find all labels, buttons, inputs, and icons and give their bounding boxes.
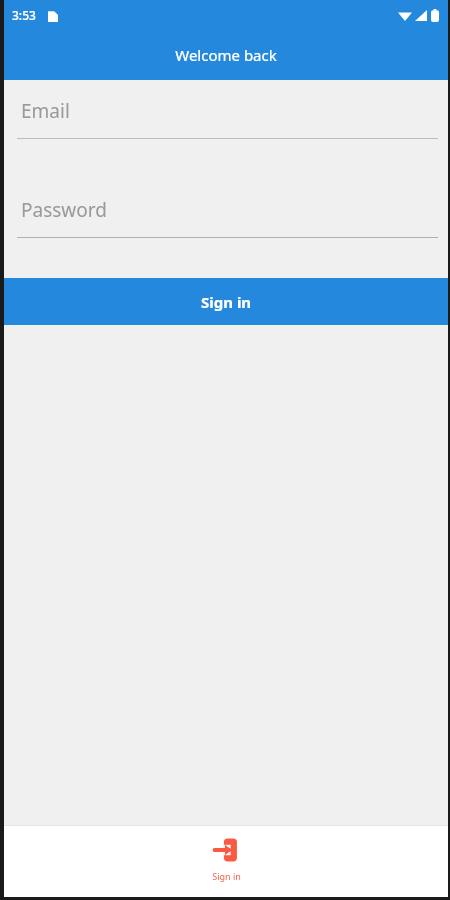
staticText: Welcome back	[175, 45, 277, 65]
button[interactable]: Password	[21, 193, 436, 227]
staticText: Sign in	[201, 292, 252, 312]
staticText: Password	[21, 197, 107, 223]
button[interactable]: Sign in	[166, 826, 286, 882]
staticText: Email	[21, 98, 70, 124]
button[interactable]: Sign in	[4, 278, 448, 325]
button[interactable]: Email	[21, 94, 436, 128]
staticText: Sign in	[212, 870, 241, 882]
staticText: 3:53	[12, 7, 36, 23]
